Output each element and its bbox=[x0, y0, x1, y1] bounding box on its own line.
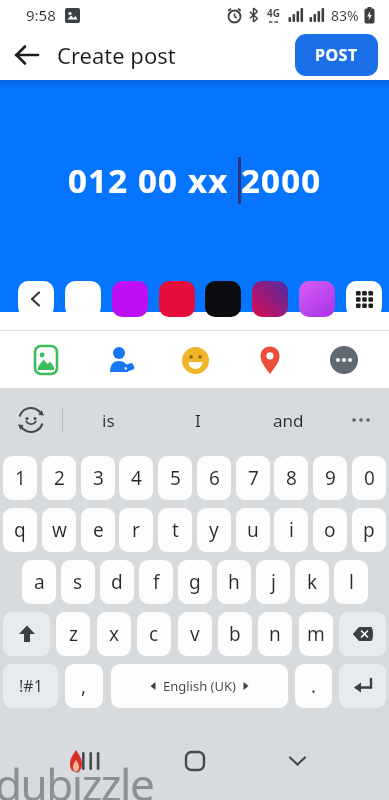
button[interactable]: v bbox=[178, 612, 212, 656]
button[interactable] bbox=[333, 388, 389, 452]
button[interactable] bbox=[14, 42, 40, 68]
staticText: 8 bbox=[286, 465, 297, 491]
button[interactable]: q bbox=[3, 508, 37, 552]
button[interactable]: e bbox=[81, 508, 115, 552]
staticText: d bbox=[111, 569, 123, 595]
button[interactable]: o bbox=[313, 508, 347, 552]
staticText: Create post bbox=[57, 40, 176, 70]
button[interactable]: h bbox=[217, 560, 251, 604]
button[interactable] bbox=[205, 281, 241, 317]
button[interactable]: m bbox=[299, 612, 333, 656]
staticText: 3 bbox=[93, 465, 104, 491]
button[interactable] bbox=[31, 345, 61, 375]
button[interactable]: z bbox=[56, 612, 90, 656]
button[interactable]: 8 bbox=[274, 456, 308, 500]
button[interactable]: u bbox=[236, 508, 270, 552]
staticText: c bbox=[149, 621, 159, 647]
button[interactable] bbox=[0, 388, 62, 452]
button[interactable]: c bbox=[137, 612, 171, 656]
button[interactable] bbox=[70, 739, 114, 783]
button[interactable]: . bbox=[295, 664, 332, 708]
button[interactable]: w bbox=[42, 508, 76, 552]
button[interactable] bbox=[275, 739, 319, 783]
staticText: r bbox=[132, 517, 140, 543]
button[interactable] bbox=[106, 345, 136, 375]
button[interactable] bbox=[252, 281, 288, 317]
staticText: n bbox=[269, 621, 281, 647]
button[interactable]: POST bbox=[295, 34, 378, 76]
staticText: is bbox=[102, 409, 115, 432]
button[interactable] bbox=[329, 345, 359, 375]
button[interactable]: j bbox=[256, 560, 290, 604]
button[interactable]: and bbox=[243, 388, 333, 452]
staticText: 012 00 xx bbox=[68, 158, 229, 203]
button[interactable]: 5 bbox=[158, 456, 192, 500]
staticText: p bbox=[363, 517, 375, 543]
staticText: o bbox=[324, 517, 336, 543]
button[interactable] bbox=[65, 281, 101, 317]
button[interactable] bbox=[346, 281, 382, 317]
staticText: y bbox=[209, 517, 219, 543]
button[interactable]: 1 bbox=[3, 456, 37, 500]
staticText: u bbox=[247, 517, 259, 543]
staticText: !#1 bbox=[19, 675, 43, 697]
button[interactable] bbox=[180, 345, 210, 375]
staticText: v bbox=[190, 621, 200, 647]
staticText: 2 bbox=[54, 465, 65, 491]
staticText: e bbox=[93, 517, 104, 543]
button[interactable]: k bbox=[295, 560, 329, 604]
button[interactable]: p bbox=[352, 508, 386, 552]
button[interactable]: English (UK) bbox=[111, 664, 288, 708]
staticText: 2000 bbox=[241, 158, 322, 203]
button[interactable]: l bbox=[334, 560, 368, 604]
button[interactable]: d bbox=[100, 560, 134, 604]
button[interactable]: x bbox=[97, 612, 131, 656]
staticText: 4 bbox=[131, 465, 142, 491]
button[interactable] bbox=[255, 345, 285, 375]
button[interactable]: g bbox=[178, 560, 212, 604]
button[interactable]: t bbox=[158, 508, 192, 552]
button[interactable] bbox=[339, 664, 386, 708]
staticText: 1 bbox=[15, 465, 26, 491]
button[interactable]: 2 bbox=[42, 456, 76, 500]
staticText: m bbox=[307, 621, 325, 647]
staticText: 9:58 bbox=[26, 5, 56, 25]
button[interactable]: s bbox=[61, 560, 95, 604]
staticText: 5 bbox=[170, 465, 181, 491]
staticText: POST bbox=[315, 44, 358, 66]
button[interactable]: 7 bbox=[236, 456, 270, 500]
button[interactable]: f bbox=[139, 560, 173, 604]
button[interactable]: n bbox=[258, 612, 292, 656]
button[interactable]: !#1 bbox=[3, 664, 58, 708]
button[interactable]: 0 bbox=[352, 456, 386, 500]
staticText: s bbox=[73, 569, 83, 595]
staticText: q bbox=[14, 517, 26, 543]
button[interactable]: b bbox=[218, 612, 252, 656]
staticText: f bbox=[153, 569, 160, 595]
staticText: and bbox=[273, 409, 304, 432]
button[interactable]: 3 bbox=[81, 456, 115, 500]
button[interactable]: i bbox=[274, 508, 308, 552]
button[interactable]: 4 bbox=[119, 456, 153, 500]
staticText: t bbox=[172, 517, 179, 543]
staticText: j bbox=[271, 569, 276, 595]
button[interactable] bbox=[299, 281, 335, 317]
button[interactable]: 9 bbox=[313, 456, 347, 500]
button[interactable] bbox=[173, 739, 217, 783]
button[interactable] bbox=[339, 612, 386, 656]
button[interactable]: 6 bbox=[197, 456, 231, 500]
button[interactable] bbox=[18, 281, 54, 317]
button[interactable]: y bbox=[197, 508, 231, 552]
staticText: 9 bbox=[325, 465, 336, 491]
button[interactable] bbox=[3, 612, 50, 656]
staticText: dubizzle bbox=[0, 754, 154, 800]
staticText: k bbox=[307, 569, 318, 595]
button[interactable]: I bbox=[153, 388, 243, 452]
button[interactable]: is bbox=[63, 388, 153, 452]
button[interactable]: r bbox=[119, 508, 153, 552]
button[interactable] bbox=[159, 281, 195, 317]
button[interactable]: , bbox=[65, 664, 103, 708]
button[interactable]: a bbox=[22, 560, 56, 604]
button[interactable] bbox=[112, 281, 148, 317]
staticText: . bbox=[311, 673, 317, 699]
